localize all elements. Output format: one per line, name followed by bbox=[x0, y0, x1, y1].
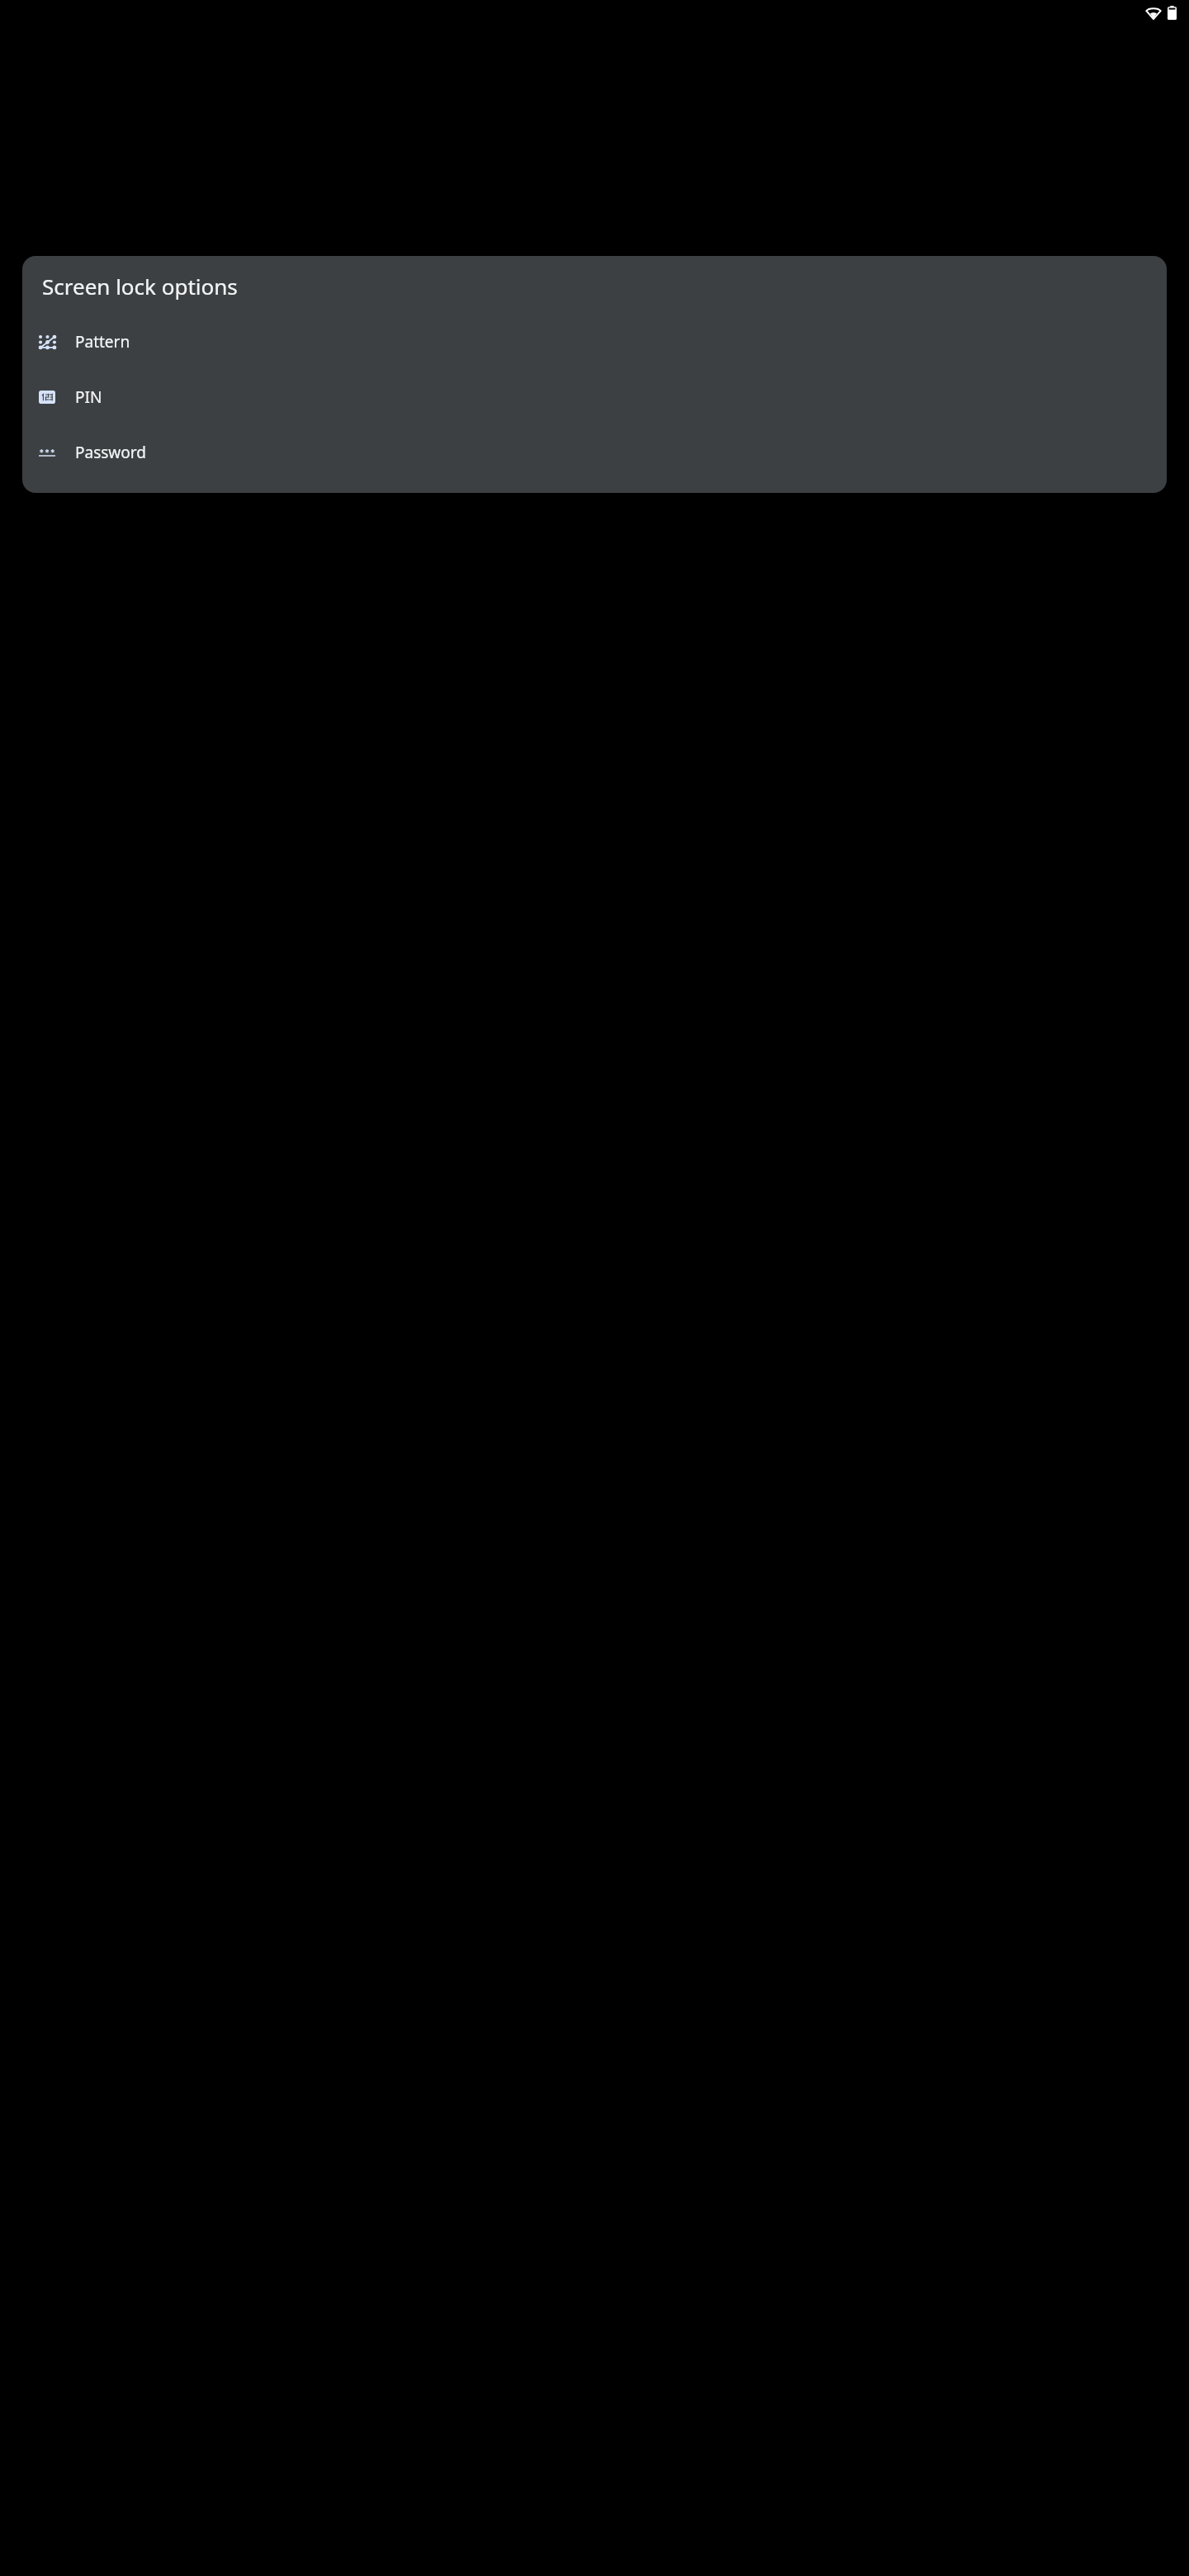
other: Battery bbox=[1168, 6, 1177, 20]
button[interactable]: Pattern bbox=[22, 314, 1167, 369]
button[interactable]: PIN bbox=[22, 369, 1167, 424]
staticText: PIN bbox=[75, 386, 102, 408]
button[interactable]: Password bbox=[22, 424, 1167, 480]
staticText: Pattern bbox=[75, 331, 130, 353]
staticText: Password bbox=[75, 442, 146, 463]
staticText: Screen lock options bbox=[42, 272, 238, 301]
other: Wi-Fi bbox=[1146, 7, 1161, 19]
